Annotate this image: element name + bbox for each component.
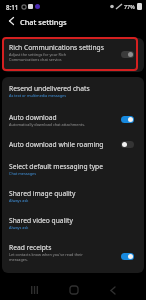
button[interactable]: Rich Communications settings: [2, 35, 144, 69]
button[interactable]: Off: [121, 141, 134, 148]
staticText: messages.: [9, 257, 28, 262]
staticText: Automatically download chat attachments.: [9, 122, 85, 127]
button[interactable]: On: [121, 116, 134, 123]
staticText: Shared image quality: [9, 189, 76, 198]
staticText: 8:11: [6, 3, 19, 11]
staticText: Adjust the settings for your Rich: [9, 52, 67, 57]
button[interactable]: Shared video quality: [2, 209, 144, 236]
button[interactable]: Shared image quality: [2, 182, 144, 209]
button[interactable]: Auto download: [2, 106, 144, 133]
staticText: Communications chat service.: [9, 57, 63, 62]
button[interactable]: Auto download while roaming: [2, 133, 144, 155]
button[interactable]: Back: [103, 280, 123, 300]
button[interactable]: Home: [64, 280, 84, 300]
staticText: Always ask: [9, 225, 29, 230]
button[interactable]: Read receipts: [2, 235, 144, 270]
staticText: 77%: [124, 3, 135, 10]
staticText: Always ask: [9, 198, 29, 203]
staticText: Rich Communications settings: [9, 43, 104, 52]
staticText: Auto download while roaming: [9, 140, 104, 149]
staticText: As text or multimedia messages: [9, 93, 66, 98]
staticText: Auto download: [9, 113, 57, 122]
button[interactable]: Select default messaging type: [2, 155, 144, 182]
staticText: Read receipts: [9, 243, 52, 252]
button[interactable]: On: [121, 253, 134, 260]
button[interactable]: Navigate up: [4, 13, 19, 28]
staticText: Chat settings: [20, 17, 67, 27]
button[interactable]: Resend undelivered chats: [2, 76, 144, 105]
staticText: Select default messaging type: [9, 162, 103, 171]
staticText: Resend undelivered chats: [9, 84, 90, 93]
staticText: Shared video quality: [9, 216, 73, 225]
button[interactable]: Recent apps: [24, 280, 44, 300]
button[interactable]: Off: [121, 51, 134, 58]
staticText: Let contacts know when you've read their: [9, 252, 83, 257]
staticText: Chat messages: [9, 171, 36, 176]
